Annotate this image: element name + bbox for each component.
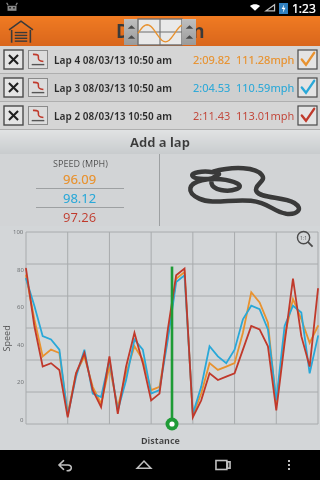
button[interactable]: Delete lap xyxy=(0,46,320,73)
staticText: 60 xyxy=(17,303,24,311)
staticText: 2:04.53 xyxy=(193,80,231,95)
button[interactable]: Recent apps xyxy=(205,450,241,480)
button[interactable]: Delete lap xyxy=(4,50,23,69)
staticText: 113.01mph xyxy=(236,108,295,123)
staticText: SPEED (MPH) xyxy=(53,157,108,169)
button[interactable]: Toggle lap visibility xyxy=(298,78,317,97)
staticText: 80 xyxy=(17,266,24,274)
staticText: Distance xyxy=(141,434,180,446)
staticText: 0 xyxy=(20,416,24,424)
button[interactable]: Delete lap xyxy=(4,78,23,97)
staticText: 111.28mph xyxy=(236,52,295,67)
staticText: 20 xyxy=(17,378,24,386)
button[interactable]: Back xyxy=(47,450,83,480)
button[interactable]: More options xyxy=(275,451,303,479)
button[interactable]: Lap thumbnail xyxy=(28,50,48,69)
staticText: 1:1 xyxy=(300,235,308,242)
staticText: 2:11.43 xyxy=(193,108,231,123)
staticText: Speed xyxy=(0,324,11,351)
button[interactable]: Zoom 1:1 xyxy=(296,230,314,248)
button[interactable]: Delete lap xyxy=(0,74,320,101)
staticText: 97.26 xyxy=(63,208,97,226)
button[interactable]: Lap thumbnail xyxy=(28,106,48,125)
button[interactable]: Lap thumbnail xyxy=(28,78,48,97)
staticText: Lap 4 08/03/13 10:50 am xyxy=(54,53,173,67)
staticText: 98.12 xyxy=(63,189,97,207)
staticText: 1:23 xyxy=(292,0,316,16)
button[interactable]: Toggle lap visibility xyxy=(298,50,317,69)
button[interactable]: Home xyxy=(6,16,36,46)
button[interactable]: Chart widget xyxy=(124,19,196,45)
staticText: 110.59mph xyxy=(236,80,295,95)
staticText: Da an xyxy=(116,18,205,44)
staticText: Lap 2 08/03/13 10:50 am xyxy=(54,109,173,123)
staticText: 96.09 xyxy=(63,170,97,188)
button[interactable]: Add a lap xyxy=(0,130,320,154)
button[interactable]: Home xyxy=(126,450,162,480)
button[interactable]: Delete lap xyxy=(4,106,23,125)
button[interactable]: Track map xyxy=(160,154,320,226)
staticText: Add a lap xyxy=(130,133,190,151)
staticText: 2:09.82 xyxy=(193,52,231,67)
staticText: Lap 3 08/03/13 10:50 am xyxy=(54,81,173,95)
staticText: 40 xyxy=(17,341,24,349)
staticText: 100 xyxy=(13,228,24,236)
button[interactable]: Delete lap xyxy=(0,102,320,129)
button[interactable]: Toggle lap visibility xyxy=(298,106,317,125)
